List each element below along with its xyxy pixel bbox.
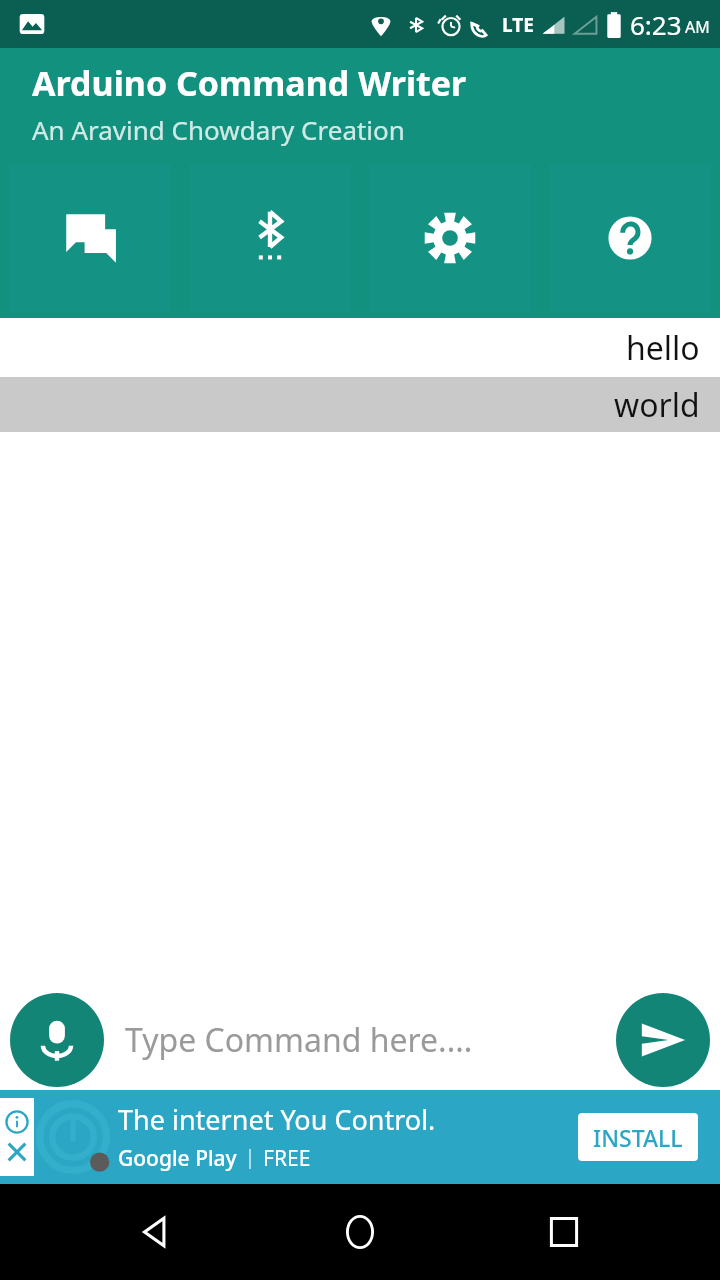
staticText: LTE [502, 12, 534, 38]
staticText: world [614, 383, 700, 427]
button[interactable]: world [0, 377, 720, 432]
button[interactable]: Close ad [2, 1137, 32, 1167]
staticText: hello [626, 326, 700, 370]
staticText: AM [685, 16, 710, 38]
button[interactable]: Send [616, 993, 710, 1087]
staticText: FREE [263, 1144, 311, 1173]
button[interactable]: Back [108, 1184, 204, 1280]
button[interactable]: INSTALL [578, 1113, 698, 1161]
button[interactable]: Voice input [10, 993, 104, 1087]
staticText: INSTALL [593, 1122, 683, 1153]
button[interactable]: Home [312, 1184, 408, 1280]
button[interactable]: Recents [516, 1184, 612, 1280]
staticText: 6:23 [630, 7, 682, 42]
button[interactable]: Help [549, 164, 711, 312]
button[interactable]: Settings [369, 164, 531, 312]
button[interactable]: Ad info [2, 1107, 32, 1137]
staticText: Arduino Command Writer [32, 60, 467, 106]
staticText: An Aravind Chowdary Creation [32, 112, 405, 147]
button[interactable]: Messages [9, 164, 171, 312]
button[interactable]: Type Command here.... [125, 1005, 595, 1075]
staticText: The internet You Control. [118, 1101, 436, 1138]
staticText: Type Command here.... [125, 1018, 473, 1062]
button[interactable]: Bluetooth [189, 164, 351, 312]
staticText: Google Play [118, 1144, 237, 1173]
button[interactable]: hello [0, 318, 720, 377]
